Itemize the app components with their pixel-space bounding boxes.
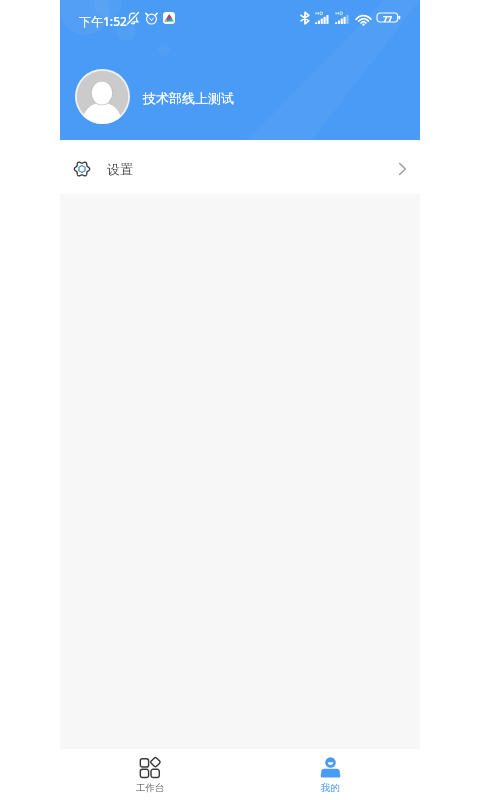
button[interactable]: 我的 [240, 749, 420, 800]
staticText: 技术部线上测试 [143, 90, 234, 106]
staticText: 设置 [107, 161, 133, 177]
staticText: 我的 [321, 782, 340, 794]
button[interactable]: 工作台 [60, 749, 240, 800]
staticText: 77 [383, 13, 393, 22]
button[interactable]: Profile avatar [75, 69, 130, 124]
button[interactable]: 设置 [60, 140, 420, 194]
staticText: 下午1:52 [79, 13, 127, 29]
staticText: 工作台 [136, 782, 165, 794]
